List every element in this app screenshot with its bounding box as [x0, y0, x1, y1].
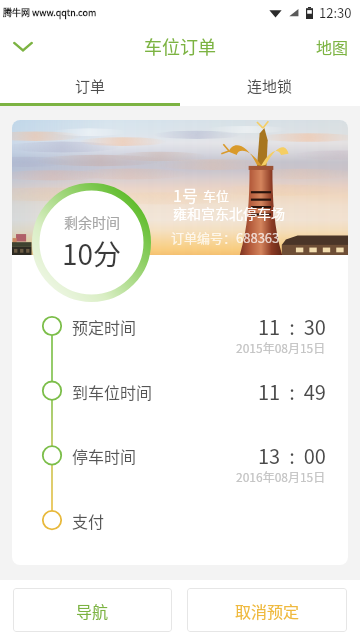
staticText: 雍和宫东北停车场	[173, 203, 285, 223]
button[interactable]: 导航	[13, 588, 172, 632]
button[interactable]: 订单	[0, 68, 180, 103]
button[interactable]: 到车位时间	[12, 363, 348, 419]
staticText: 到车位时间	[72, 380, 153, 403]
staticText: 取消预定	[235, 599, 300, 622]
staticText: 支付	[72, 509, 105, 532]
staticText: 导航	[76, 599, 109, 622]
staticText: 12:30	[319, 3, 352, 22]
button[interactable]: Collapse	[0, 24, 46, 68]
button[interactable]: 预定时间	[12, 298, 348, 354]
staticText: 13 : 00	[258, 441, 326, 470]
staticText: 订单编号：688363	[171, 228, 280, 247]
staticText: 11 : 49	[258, 377, 326, 406]
staticText: 连地锁	[247, 75, 293, 97]
staticText: 11 : 30	[258, 312, 326, 341]
button[interactable]: 停车时间	[12, 427, 348, 483]
staticText: 剩余时间	[64, 212, 120, 232]
staticText: 2016年08月15日	[236, 468, 326, 485]
staticText: 车位订单	[144, 33, 216, 59]
button[interactable]: 地图	[304, 24, 360, 68]
staticText: 订单	[75, 75, 106, 97]
button[interactable]: 支付	[12, 492, 348, 548]
staticText: 预定时间	[72, 315, 137, 338]
staticText: 10分	[62, 233, 122, 274]
staticText: 车位	[203, 186, 230, 205]
button[interactable]: 连地锁	[180, 68, 360, 103]
staticText: 1号	[173, 183, 198, 206]
staticText: 地图	[316, 35, 349, 58]
staticText: 停车时间	[72, 444, 137, 467]
staticText: 2015年08月15日	[236, 339, 326, 356]
staticText: 腾牛网 www.qqtn.com	[3, 6, 97, 19]
button[interactable]: 取消预定	[187, 588, 347, 632]
